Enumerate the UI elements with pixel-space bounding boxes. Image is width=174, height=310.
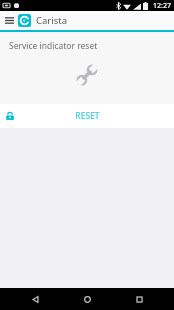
button[interactable]: Locked — premium feature <box>0 104 174 128</box>
other: Locked — premium feature <box>5 111 15 121</box>
staticText: RESET <box>75 110 100 122</box>
button[interactable]: Back <box>18 288 52 310</box>
staticText: Carista <box>36 14 68 27</box>
staticText: Service indicator reset <box>9 40 98 52</box>
staticText: 12:27 <box>153 1 171 11</box>
button[interactable]: Recent apps <box>122 288 156 310</box>
button[interactable]: Home <box>70 288 104 310</box>
button[interactable]: Open navigation drawer <box>2 13 17 28</box>
